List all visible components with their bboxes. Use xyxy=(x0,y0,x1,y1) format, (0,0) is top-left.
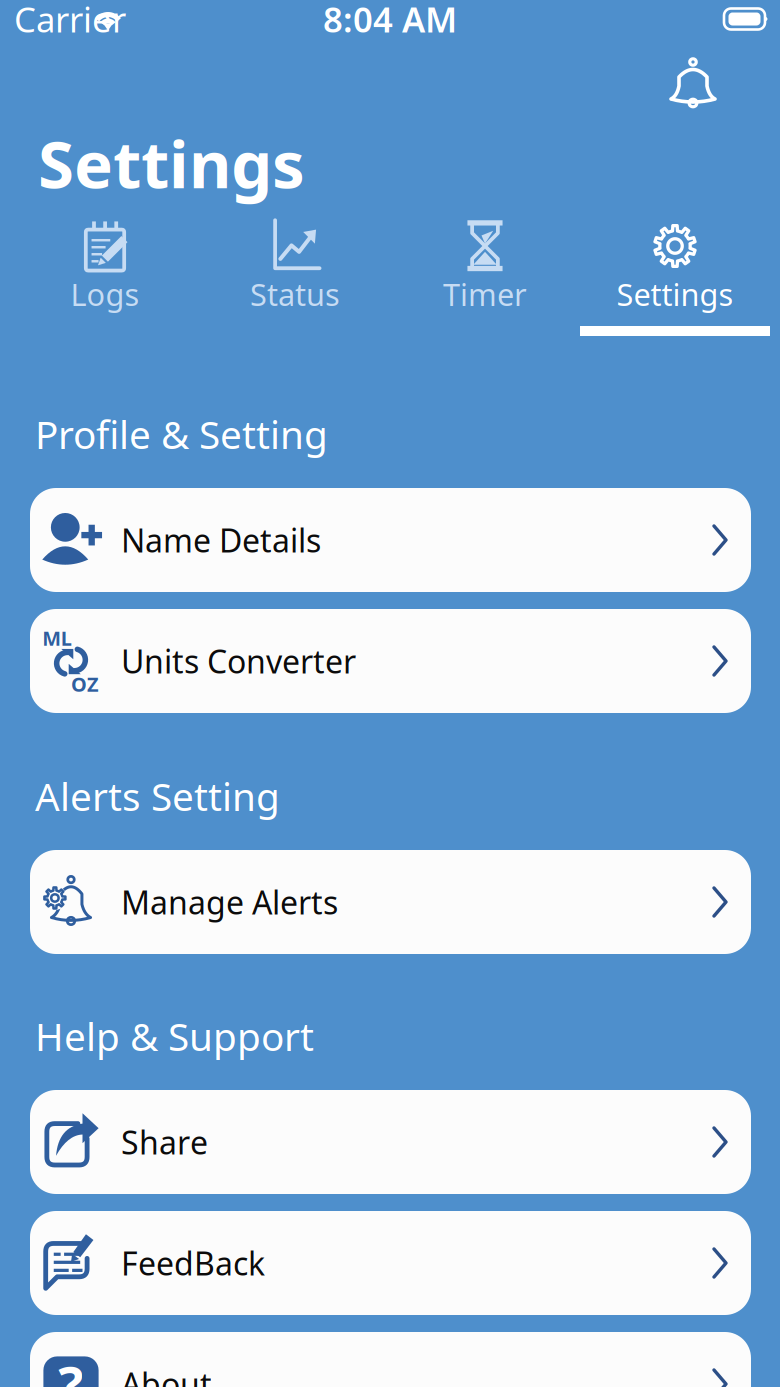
staticText: ? xyxy=(60,1354,82,1387)
staticText: Status xyxy=(250,274,340,314)
button[interactable]: Notifications xyxy=(663,55,723,117)
staticText: Profile & Setting xyxy=(35,408,328,460)
button[interactable]: FeedBack xyxy=(30,1211,751,1315)
button[interactable]: Name Details xyxy=(30,488,751,592)
staticText: Settings xyxy=(38,120,305,206)
staticText: Logs xyxy=(70,274,139,314)
staticText: About xyxy=(121,1363,212,1387)
button[interactable]: Settings xyxy=(580,215,770,341)
button[interactable]: Timer xyxy=(390,215,580,341)
staticText: Help & Support xyxy=(35,1010,314,1062)
staticText: Timer xyxy=(443,274,527,314)
staticText: FeedBack xyxy=(121,1242,265,1284)
button[interactable]: Share xyxy=(30,1090,751,1194)
button[interactable]: Manage Alerts xyxy=(30,850,751,954)
staticText: 8:04 AM xyxy=(323,0,457,42)
button[interactable]: ML xyxy=(30,609,751,713)
staticText: Units Converter xyxy=(121,640,356,682)
staticText: ML xyxy=(46,629,72,653)
button[interactable]: ? xyxy=(30,1332,751,1387)
staticText: Settings xyxy=(616,274,733,314)
button[interactable]: Status xyxy=(200,215,390,341)
staticText: Name Details xyxy=(121,519,321,561)
staticText: Manage Alerts xyxy=(121,881,338,923)
staticText: Share xyxy=(121,1121,208,1163)
staticText: Carrier xyxy=(14,0,126,42)
staticText: Alerts Setting xyxy=(35,770,280,822)
button[interactable]: Logs xyxy=(10,215,200,341)
staticText: OZ xyxy=(71,669,95,693)
